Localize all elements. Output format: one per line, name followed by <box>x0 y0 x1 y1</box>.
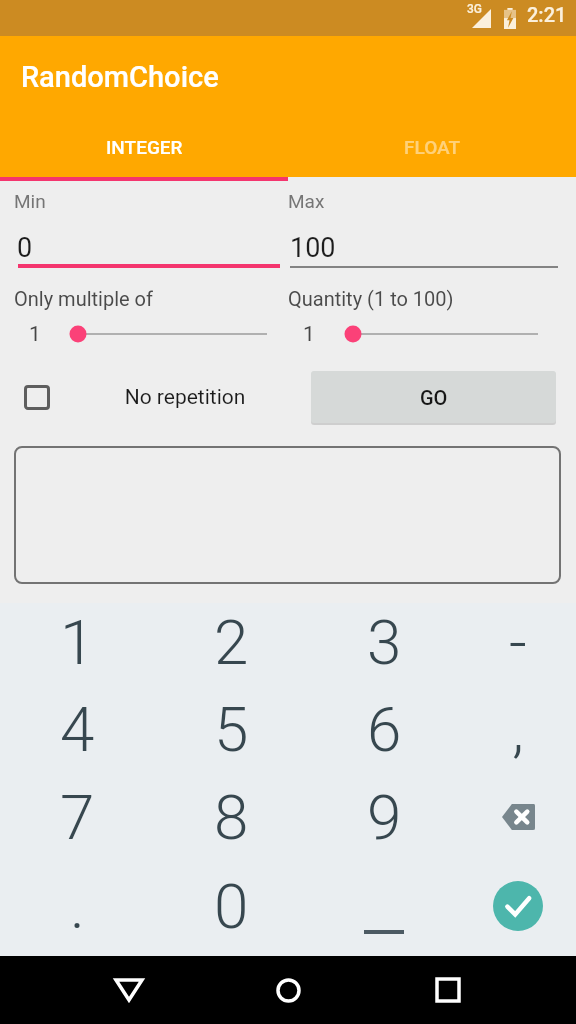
staticText: 9 <box>367 781 402 854</box>
button[interactable]: 8 <box>154 773 308 861</box>
button[interactable]: Backspace <box>460 773 576 861</box>
button[interactable]: 5 <box>154 685 308 773</box>
staticText: 3G <box>467 2 482 16</box>
staticText: 2 <box>214 606 249 679</box>
button[interactable]: 9 <box>308 773 460 861</box>
staticText: Max <box>288 190 325 212</box>
button[interactable]: - <box>460 598 576 686</box>
staticText: 4 <box>60 693 95 766</box>
button[interactable]: 6 <box>308 685 460 773</box>
staticText: Min <box>14 190 46 212</box>
staticText: Quantity (1 to 100) <box>288 287 454 310</box>
button[interactable]: 1 <box>0 598 154 686</box>
staticText: No repetition <box>61 385 309 410</box>
button[interactable]: . <box>0 862 154 950</box>
button[interactable]: 0 <box>154 862 308 950</box>
button[interactable]: GO <box>311 371 556 423</box>
button[interactable]: Space <box>308 862 460 950</box>
staticText: 2:21 <box>527 3 567 26</box>
button[interactable]: Home <box>257 959 319 1021</box>
staticText: 1 <box>60 606 95 679</box>
button[interactable]: , <box>460 685 576 773</box>
button[interactable]: 2 <box>154 598 308 686</box>
staticText: RandomChoice <box>21 60 219 94</box>
staticText: . <box>70 870 85 943</box>
staticText: 1 <box>29 322 41 347</box>
button[interactable]: Recents <box>417 959 479 1021</box>
button[interactable]: INTEGER <box>0 121 288 172</box>
button[interactable]: Enter <box>460 862 576 950</box>
staticText: 8 <box>214 781 249 854</box>
button[interactable]: No repetition <box>8 371 298 423</box>
staticText: 100 <box>290 232 336 264</box>
staticText: 7 <box>60 781 95 854</box>
button[interactable]: 7 <box>0 773 154 861</box>
staticText: Only multiple of <box>14 287 153 310</box>
staticText: GO <box>420 386 448 409</box>
staticText: 0 <box>214 870 249 943</box>
button[interactable]: FLOAT <box>288 121 576 172</box>
button[interactable]: 3 <box>308 598 460 686</box>
button[interactable]: 4 <box>0 685 154 773</box>
staticText: 6 <box>367 693 402 766</box>
staticText: INTEGER <box>106 136 183 158</box>
staticText: 5 <box>214 693 249 766</box>
button[interactable]: Back <box>98 959 160 1021</box>
staticText: 3 <box>367 606 402 679</box>
staticText: 1 <box>303 322 315 347</box>
staticText: - <box>509 606 527 679</box>
staticText: , <box>512 693 524 766</box>
staticText: 0 <box>17 232 33 264</box>
staticText: FLOAT <box>404 136 461 158</box>
